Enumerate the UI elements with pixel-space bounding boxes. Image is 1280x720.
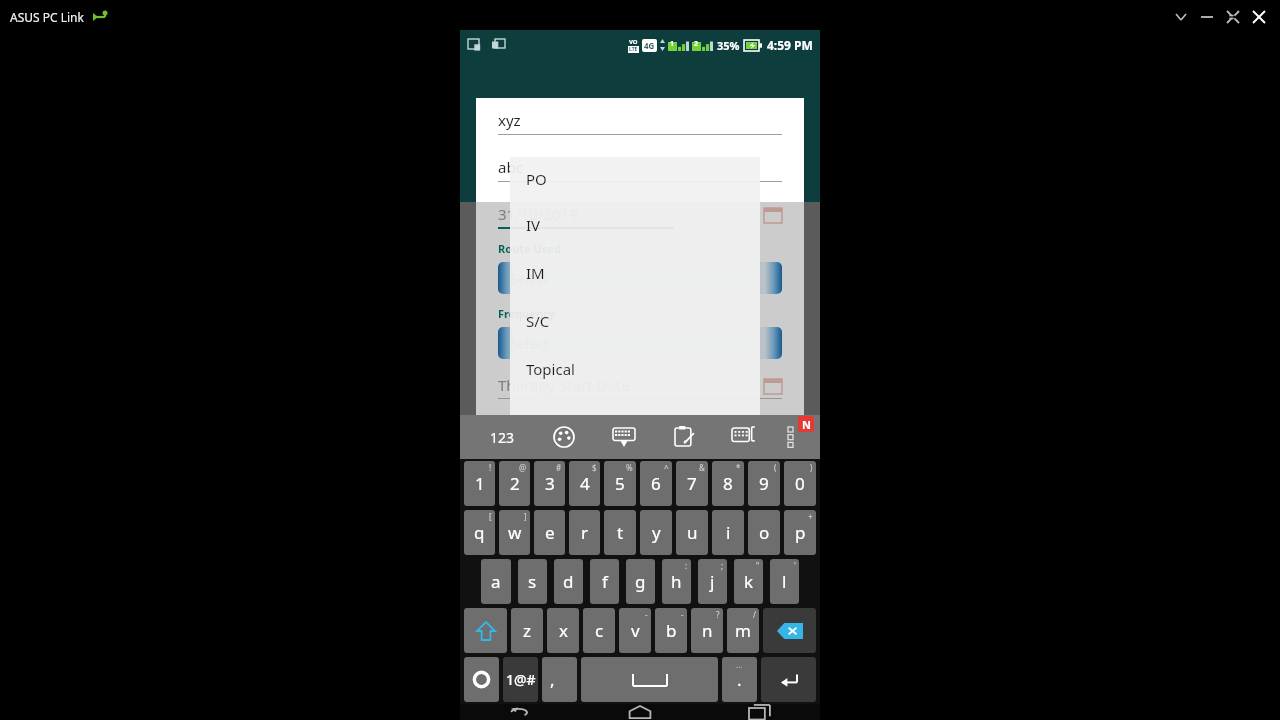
button[interactable]: @ <box>499 461 530 506</box>
button[interactable]: 1@# <box>503 657 538 702</box>
button[interactable]: i <box>712 510 744 555</box>
staticText: y <box>652 521 661 544</box>
button[interactable]: Recents <box>700 704 820 720</box>
button[interactable]: + <box>784 510 816 555</box>
button[interactable]: Space <box>581 657 718 702</box>
staticText: i <box>726 521 731 544</box>
button[interactable]: Back <box>460 704 580 720</box>
button[interactable]: Theme <box>533 415 594 459</box>
button[interactable]: Backspace <box>763 608 816 653</box>
button[interactable]: Select <box>498 262 782 294</box>
button[interactable]: y <box>640 510 672 555</box>
staticText: @ <box>519 462 527 473</box>
button[interactable]: " <box>734 559 763 604</box>
button[interactable]: ; <box>698 559 727 604</box>
button[interactable]: f <box>590 559 619 604</box>
staticText: j <box>710 570 715 593</box>
staticText: k <box>744 570 754 593</box>
staticText: 31/10/2019 <box>498 204 764 224</box>
button[interactable]: Hide keyboard <box>594 415 654 459</box>
staticText: 8 <box>723 472 733 495</box>
staticText: Select <box>510 269 549 288</box>
button[interactable]: - <box>655 608 687 653</box>
staticText: b <box>666 619 677 642</box>
button[interactable]: e <box>534 510 565 555</box>
button[interactable]: % <box>604 461 636 506</box>
button[interactable]: Home <box>580 704 700 720</box>
staticText: a <box>491 570 501 593</box>
staticText: Frequency <box>498 306 556 321</box>
button[interactable]: & <box>676 461 708 506</box>
staticText: m <box>735 619 751 642</box>
staticText: 123 <box>490 428 515 447</box>
staticText: p <box>795 521 806 544</box>
staticText: N <box>802 417 811 432</box>
staticText: - <box>681 609 684 620</box>
button[interactable]: u <box>676 510 708 555</box>
button[interactable]: Settings <box>464 657 499 702</box>
staticText: Route Used <box>498 241 561 256</box>
button[interactable]: More options <box>774 415 808 459</box>
staticText: xyz <box>498 110 521 130</box>
staticText: 6 <box>651 472 661 495</box>
staticText: 2 <box>694 39 699 48</box>
button[interactable]: t <box>604 510 636 555</box>
staticText: ... <box>736 659 743 670</box>
staticText: 5 <box>615 472 625 495</box>
button[interactable]: Minimize to tray <box>1168 4 1194 30</box>
button[interactable]: [ <box>464 510 495 555</box>
button[interactable]: Shift <box>464 608 507 653</box>
staticText: $ <box>592 462 597 473</box>
button[interactable]: IV <box>510 201 760 249</box>
button[interactable]: : <box>662 559 691 604</box>
button[interactable]: * <box>712 461 744 506</box>
staticText: s <box>528 570 537 593</box>
button[interactable]: a <box>481 559 511 604</box>
staticText: abc <box>498 157 523 177</box>
button[interactable]: Minimize <box>1194 4 1220 30</box>
button[interactable]: r <box>569 510 600 555</box>
button[interactable]: - <box>619 608 651 653</box>
button[interactable]: Close <box>1246 4 1272 30</box>
button[interactable]: o <box>748 510 780 555</box>
button[interactable]: Topical <box>510 345 760 393</box>
button[interactable]: ) <box>784 461 816 506</box>
button[interactable]: s <box>518 559 547 604</box>
button[interactable]: # <box>534 461 565 506</box>
staticText: 9 <box>759 472 769 495</box>
button[interactable]: Enter <box>761 657 816 702</box>
button[interactable]: d <box>554 559 583 604</box>
staticText: n <box>702 619 713 642</box>
button[interactable]: ^ <box>640 461 672 506</box>
button[interactable]: , <box>542 657 577 702</box>
button[interactable]: ] <box>499 510 530 555</box>
button[interactable]: ... <box>722 657 757 702</box>
staticText: 4 <box>580 472 590 495</box>
button[interactable]: / <box>727 608 759 653</box>
staticText: q <box>474 521 485 544</box>
button[interactable]: x <box>547 608 579 653</box>
staticText: & <box>699 462 705 473</box>
button[interactable]: ( <box>748 461 780 506</box>
button[interactable]: ? <box>691 608 723 653</box>
button[interactable]: ' <box>770 559 799 604</box>
button[interactable]: z <box>511 608 543 653</box>
button[interactable]: g <box>626 559 655 604</box>
staticText: 3 <box>545 472 555 495</box>
button[interactable]: ! <box>464 461 495 506</box>
button[interactable]: IM <box>510 249 760 297</box>
button[interactable]: c <box>583 608 615 653</box>
staticText: 2 <box>510 472 520 495</box>
staticText: IM <box>526 263 545 283</box>
staticText: 1 <box>475 472 485 495</box>
button[interactable]: Clipboard <box>654 415 714 459</box>
button[interactable]: S/C <box>510 297 760 345</box>
button[interactable]: Select <box>498 327 782 359</box>
button[interactable]: Restore <box>1220 4 1246 30</box>
button[interactable]: Numbers <box>472 415 533 459</box>
staticText: v <box>631 619 640 642</box>
button[interactable]: PO <box>510 157 760 201</box>
button[interactable]: One hand keyboard <box>714 415 774 459</box>
staticText: , <box>550 668 555 691</box>
button[interactable]: $ <box>569 461 600 506</box>
